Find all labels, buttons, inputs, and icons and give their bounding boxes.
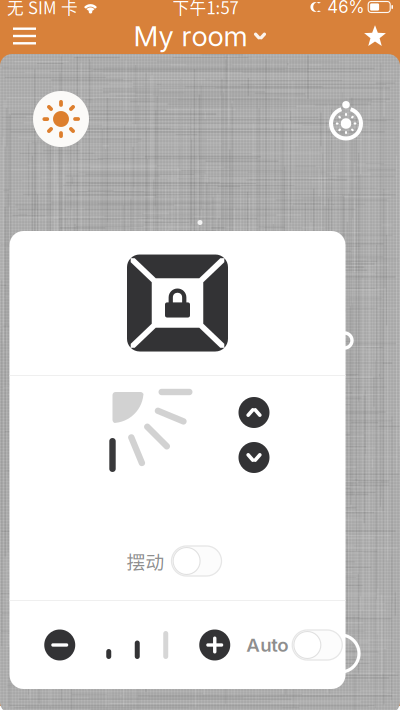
- staticText: 下午1:57: [173, 0, 239, 19]
- button[interactable]: Shutter locked: [9, 231, 345, 375]
- staticText: 摆动: [126, 547, 164, 574]
- button[interactable]: 摆动: [126, 546, 221, 576]
- button[interactable]: Light: [33, 91, 89, 147]
- button[interactable]: Favorite: [350, 18, 400, 54]
- button[interactable]: Auto: [246, 630, 342, 660]
- button[interactable]: Brightness: [324, 97, 368, 141]
- button[interactable]: Decrease fan speed: [44, 629, 75, 660]
- button[interactable]: Brightness level: [110, 390, 200, 480]
- staticText: My room: [133, 19, 247, 53]
- button[interactable]: Menu: [0, 18, 49, 54]
- button[interactable]: My room: [133, 18, 265, 54]
- button[interactable]: Increase fan speed: [199, 629, 230, 660]
- button[interactable]: Open blinds: [238, 397, 269, 428]
- staticText: Auto: [246, 634, 288, 656]
- staticText: 46%: [327, 0, 364, 17]
- staticText: 无 SIM 卡: [7, 0, 78, 19]
- button[interactable]: Close blinds: [238, 442, 269, 473]
